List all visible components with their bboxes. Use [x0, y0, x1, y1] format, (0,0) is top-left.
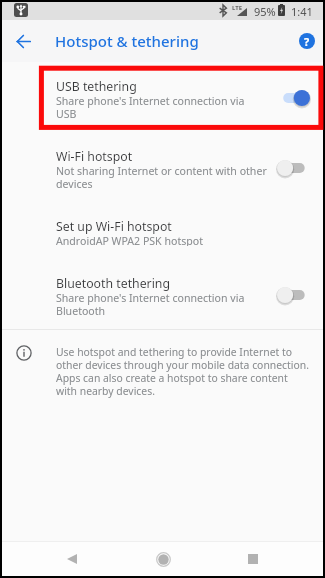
staticText: USB tethering [56, 78, 137, 95]
staticText: Wi-Fi hotspot [56, 148, 133, 165]
staticText: Share phone's Internet connection via [56, 94, 245, 108]
staticText: 95% [254, 4, 276, 19]
button[interactable]: Recent apps [233, 542, 273, 576]
staticText: Use hotspot and tethering to provide Int… [56, 345, 292, 359]
staticText: AndroidAP WPA2 PSK hotspot [56, 234, 204, 246]
button[interactable]: Bluetooth tethering [2, 259, 323, 329]
button[interactable]: Help [296, 30, 318, 52]
staticText: Hotspot & tethering [55, 31, 199, 51]
staticText: Apps can also create a hotspot to share … [56, 371, 288, 385]
staticText: other devices through your mobile data c… [56, 358, 310, 372]
button[interactable]: Turn off [277, 89, 310, 107]
staticText: Not sharing Internet or content with oth… [56, 164, 267, 178]
staticText: LTE [232, 4, 243, 12]
staticText: Bluetooth [56, 304, 106, 318]
staticText: 1:41 [291, 4, 313, 19]
staticText: Bluetooth tethering [56, 275, 171, 292]
button[interactable]: Turn on [277, 286, 310, 304]
staticText: devices [56, 177, 93, 191]
button[interactable]: Wi-Fi hotspot [2, 132, 323, 202]
button[interactable]: USB tethering [2, 62, 323, 132]
staticText: Share phone's Internet connection via [56, 291, 245, 305]
staticText: USB [56, 107, 77, 121]
staticText: Set up Wi-Fi hotspot [56, 218, 172, 235]
button[interactable]: Home [143, 542, 183, 576]
button[interactable]: Turn on [277, 159, 310, 177]
staticText: with nearby devices. [56, 384, 155, 398]
button[interactable]: Set up Wi-Fi hotspot [2, 202, 323, 259]
button[interactable]: Back [52, 542, 92, 576]
staticText: ? [304, 34, 310, 49]
button[interactable]: Back [9, 27, 37, 55]
